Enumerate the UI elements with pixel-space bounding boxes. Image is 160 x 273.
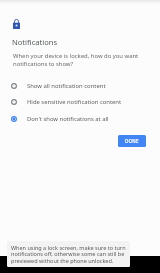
staticText: When using a lock screen, make sure to t… bbox=[11, 244, 126, 265]
staticText: When your device is locked, how do you w… bbox=[13, 52, 139, 68]
staticText: Don't show notifications at all bbox=[27, 115, 109, 123]
button[interactable]: Show all notification content bbox=[0, 78, 160, 95]
staticText: Notifications bbox=[12, 37, 58, 47]
staticText: DONE bbox=[125, 138, 139, 144]
button[interactable]: Don't show notifications at all bbox=[0, 111, 160, 128]
button[interactable]: Hide sensitive notification content bbox=[0, 94, 160, 111]
other: Lock bbox=[13, 19, 20, 29]
staticText: Show all notification content bbox=[27, 82, 106, 90]
button[interactable]: DONE bbox=[118, 135, 146, 147]
staticText: Hide sensitive notification content bbox=[27, 98, 122, 106]
